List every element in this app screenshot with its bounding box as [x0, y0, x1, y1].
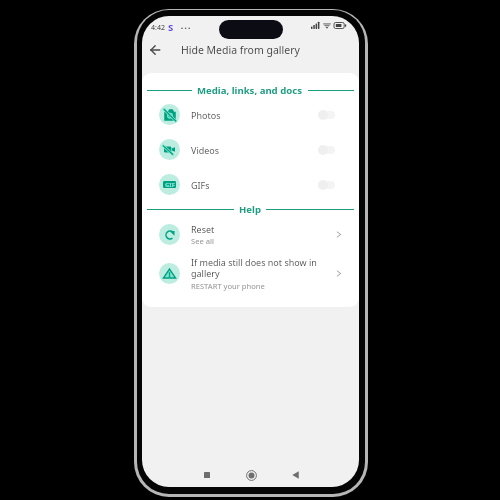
button[interactable]: Reset [142, 216, 359, 252]
staticText: Videos [191, 144, 220, 156]
staticText: Hide Media from gallery [181, 43, 300, 57]
staticText: See all [191, 236, 214, 246]
staticText: Photos [191, 109, 221, 121]
button[interactable]: Back [283, 463, 307, 487]
staticText: If media still does not show in gallery [191, 256, 336, 280]
staticText: GIF [165, 181, 175, 188]
staticText: Help [239, 203, 261, 215]
button[interactable]: Home [239, 463, 263, 487]
button[interactable]: Videos [142, 132, 359, 167]
button[interactable]: If media still does not show in gallery [142, 252, 359, 294]
staticText: S [168, 21, 174, 34]
staticText: Media, links, and docs [197, 84, 303, 96]
staticText: Reset [191, 223, 215, 235]
button[interactable]: GIF [142, 167, 359, 202]
staticText: 4:42 [151, 23, 165, 33]
button[interactable]: Photos [142, 97, 359, 132]
button[interactable]: Recent apps [195, 463, 219, 487]
staticText: GIFs [191, 179, 210, 191]
button[interactable]: Back [143, 38, 167, 62]
staticText: RESTART your phone [191, 281, 265, 291]
